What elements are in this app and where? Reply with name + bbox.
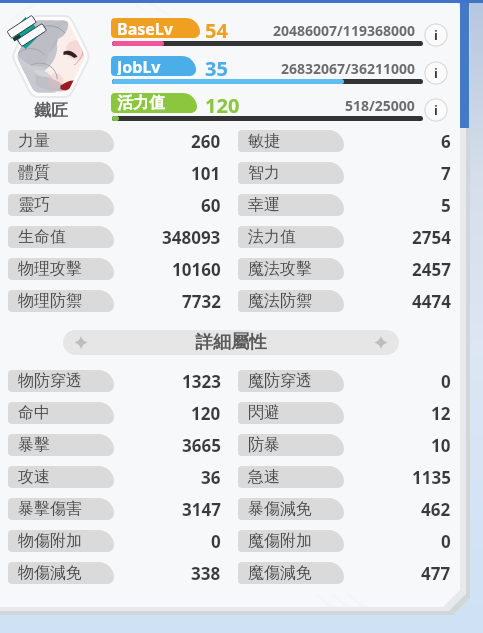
staticText: 3665 <box>182 434 221 456</box>
staticText: 36 <box>201 466 221 488</box>
staticText: 7732 <box>182 290 221 312</box>
staticText: 2754 <box>412 226 451 248</box>
staticText: 3147 <box>182 498 221 520</box>
staticText: 物傷附加 <box>18 531 82 551</box>
button[interactable]: BaseLv <box>111 18 200 38</box>
staticText: 462 <box>421 498 451 520</box>
staticText: 348093 <box>162 226 221 248</box>
button[interactable]: 魔傷減免 <box>238 562 344 584</box>
button[interactable]: 物傷減免 <box>8 562 114 584</box>
button[interactable]: 暴擊傷害 <box>8 498 114 520</box>
button[interactable]: 法力值 <box>238 226 344 248</box>
staticText: 4474 <box>412 290 451 312</box>
staticText: 幸運 <box>248 195 280 215</box>
staticText: 54 <box>205 17 228 44</box>
button[interactable]: 活力值 <box>111 93 197 113</box>
button[interactable]: 靈巧 <box>8 194 114 216</box>
staticText: 338 <box>191 562 221 584</box>
staticText: 120 <box>191 402 221 424</box>
button[interactable]: 體質 <box>8 162 114 184</box>
staticText: 26832067/36211000 <box>281 59 415 75</box>
button[interactable]: Info <box>424 23 448 47</box>
staticText: 477 <box>421 562 451 584</box>
button[interactable]: 防暴 <box>238 434 344 456</box>
staticText: 防暴 <box>248 435 280 455</box>
button[interactable]: 力量 <box>8 130 114 152</box>
staticText: 法力值 <box>248 227 296 247</box>
staticText: 120 <box>205 92 240 119</box>
staticText: 0 <box>441 530 451 552</box>
staticText: 101 <box>191 162 221 184</box>
staticText: 35 <box>205 55 228 82</box>
staticText: 10 <box>431 434 451 456</box>
staticText: 7 <box>441 162 451 184</box>
staticText: 魔傷減免 <box>248 563 312 583</box>
staticText: 物理攻擊 <box>18 259 82 279</box>
button[interactable]: 詳細屬性 <box>63 330 399 355</box>
staticText: 260 <box>191 130 221 152</box>
button[interactable]: 攻速 <box>8 466 114 488</box>
button[interactable]: 魔傷附加 <box>238 530 344 552</box>
staticText: i <box>434 101 438 119</box>
button[interactable]: 敏捷 <box>238 130 344 152</box>
staticText: 暴擊 <box>18 435 50 455</box>
staticText: JobLv <box>117 56 161 75</box>
staticText: 0 <box>441 370 451 392</box>
staticText: 智力 <box>248 163 280 183</box>
button[interactable]: 物傷附加 <box>8 530 114 552</box>
staticText: BaseLv <box>117 18 173 37</box>
staticText: 魔防穿透 <box>248 371 312 391</box>
staticText: 60 <box>201 194 221 216</box>
staticText: 急速 <box>248 467 280 487</box>
button[interactable]: Info <box>424 98 448 122</box>
button[interactable]: 命中 <box>8 402 114 424</box>
staticText: 攻速 <box>18 467 50 487</box>
button[interactable]: 暴傷減免 <box>238 498 344 520</box>
staticText: 魔法攻擊 <box>248 259 312 279</box>
button[interactable]: JobLv <box>111 56 196 76</box>
staticText: 10160 <box>172 258 221 280</box>
staticText: 1135 <box>412 466 451 488</box>
staticText: 敏捷 <box>248 131 280 151</box>
button[interactable]: 物理防禦 <box>8 290 114 312</box>
staticText: 生命值 <box>18 227 66 247</box>
button[interactable]: 生命值 <box>8 226 114 248</box>
button[interactable]: Scroll position <box>458 0 469 128</box>
staticText: 閃避 <box>248 403 280 423</box>
staticText: 12 <box>431 402 451 424</box>
staticText: 20486007/119368000 <box>273 21 415 37</box>
staticText: 力量 <box>18 131 50 151</box>
staticText: 5 <box>441 194 451 216</box>
staticText: 活力值 <box>117 93 165 112</box>
button[interactable]: 急速 <box>238 466 344 488</box>
staticText: 物防穿透 <box>18 371 82 391</box>
button[interactable]: 物理攻擊 <box>8 258 114 280</box>
button[interactable]: 閃避 <box>238 402 344 424</box>
staticText: 體質 <box>18 163 50 183</box>
staticText: 暴傷減免 <box>248 499 312 519</box>
staticText: 1323 <box>182 370 221 392</box>
staticText: 命中 <box>18 403 50 423</box>
staticText: 518/25000 <box>345 96 415 112</box>
button[interactable]: 魔法攻擊 <box>238 258 344 280</box>
staticText: 物傷減免 <box>18 563 82 583</box>
staticText: 魔法防禦 <box>248 291 312 311</box>
staticText: 鐵匠 <box>34 100 68 121</box>
staticText: 6 <box>441 130 451 152</box>
button[interactable]: Info <box>424 61 448 85</box>
button[interactable]: 物防穿透 <box>8 370 114 392</box>
staticText: 物理防禦 <box>18 291 82 311</box>
staticText: 0 <box>211 530 221 552</box>
button[interactable]: 魔防穿透 <box>238 370 344 392</box>
staticText: 魔傷附加 <box>248 531 312 551</box>
staticText: 靈巧 <box>18 195 50 215</box>
staticText: 2457 <box>412 258 451 280</box>
staticText: 暴擊傷害 <box>18 499 82 519</box>
button[interactable]: 幸運 <box>238 194 344 216</box>
button[interactable]: 智力 <box>238 162 344 184</box>
staticText: 詳細屬性 <box>195 331 267 354</box>
button[interactable]: 魔法防禦 <box>238 290 344 312</box>
staticText: i <box>434 64 438 82</box>
button[interactable]: 暴擊 <box>8 434 114 456</box>
staticText: i <box>434 26 438 44</box>
